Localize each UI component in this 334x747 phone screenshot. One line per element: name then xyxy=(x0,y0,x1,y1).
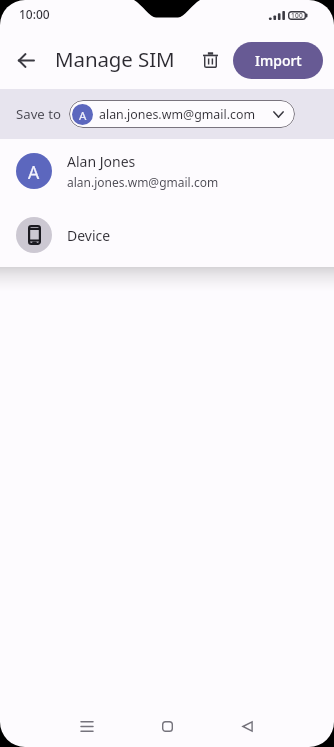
staticText: alan.jones.wm@gmail.com xyxy=(67,174,219,190)
staticText: Import xyxy=(255,51,302,70)
staticText: 10:00 xyxy=(19,6,50,22)
button[interactable]: A xyxy=(0,139,334,203)
staticText: Manage SIM xyxy=(55,45,175,73)
button[interactable]: A xyxy=(69,100,295,128)
button[interactable]: Navigate up xyxy=(6,40,46,80)
button[interactable]: Home xyxy=(146,705,189,747)
staticText: Save to xyxy=(16,105,61,123)
staticText: 100 xyxy=(291,11,303,20)
button[interactable]: Device xyxy=(0,203,334,267)
staticText: A xyxy=(28,160,40,184)
staticText: A xyxy=(79,108,87,124)
staticText: Device xyxy=(67,226,111,245)
button[interactable]: Import xyxy=(233,42,323,79)
button[interactable]: Delete xyxy=(190,40,230,80)
staticText: Alan Jones xyxy=(67,152,136,171)
staticText: alan.jones.wm@gmail.com xyxy=(99,106,256,123)
button[interactable]: Back xyxy=(226,705,269,747)
button[interactable]: Recent apps xyxy=(65,705,108,747)
